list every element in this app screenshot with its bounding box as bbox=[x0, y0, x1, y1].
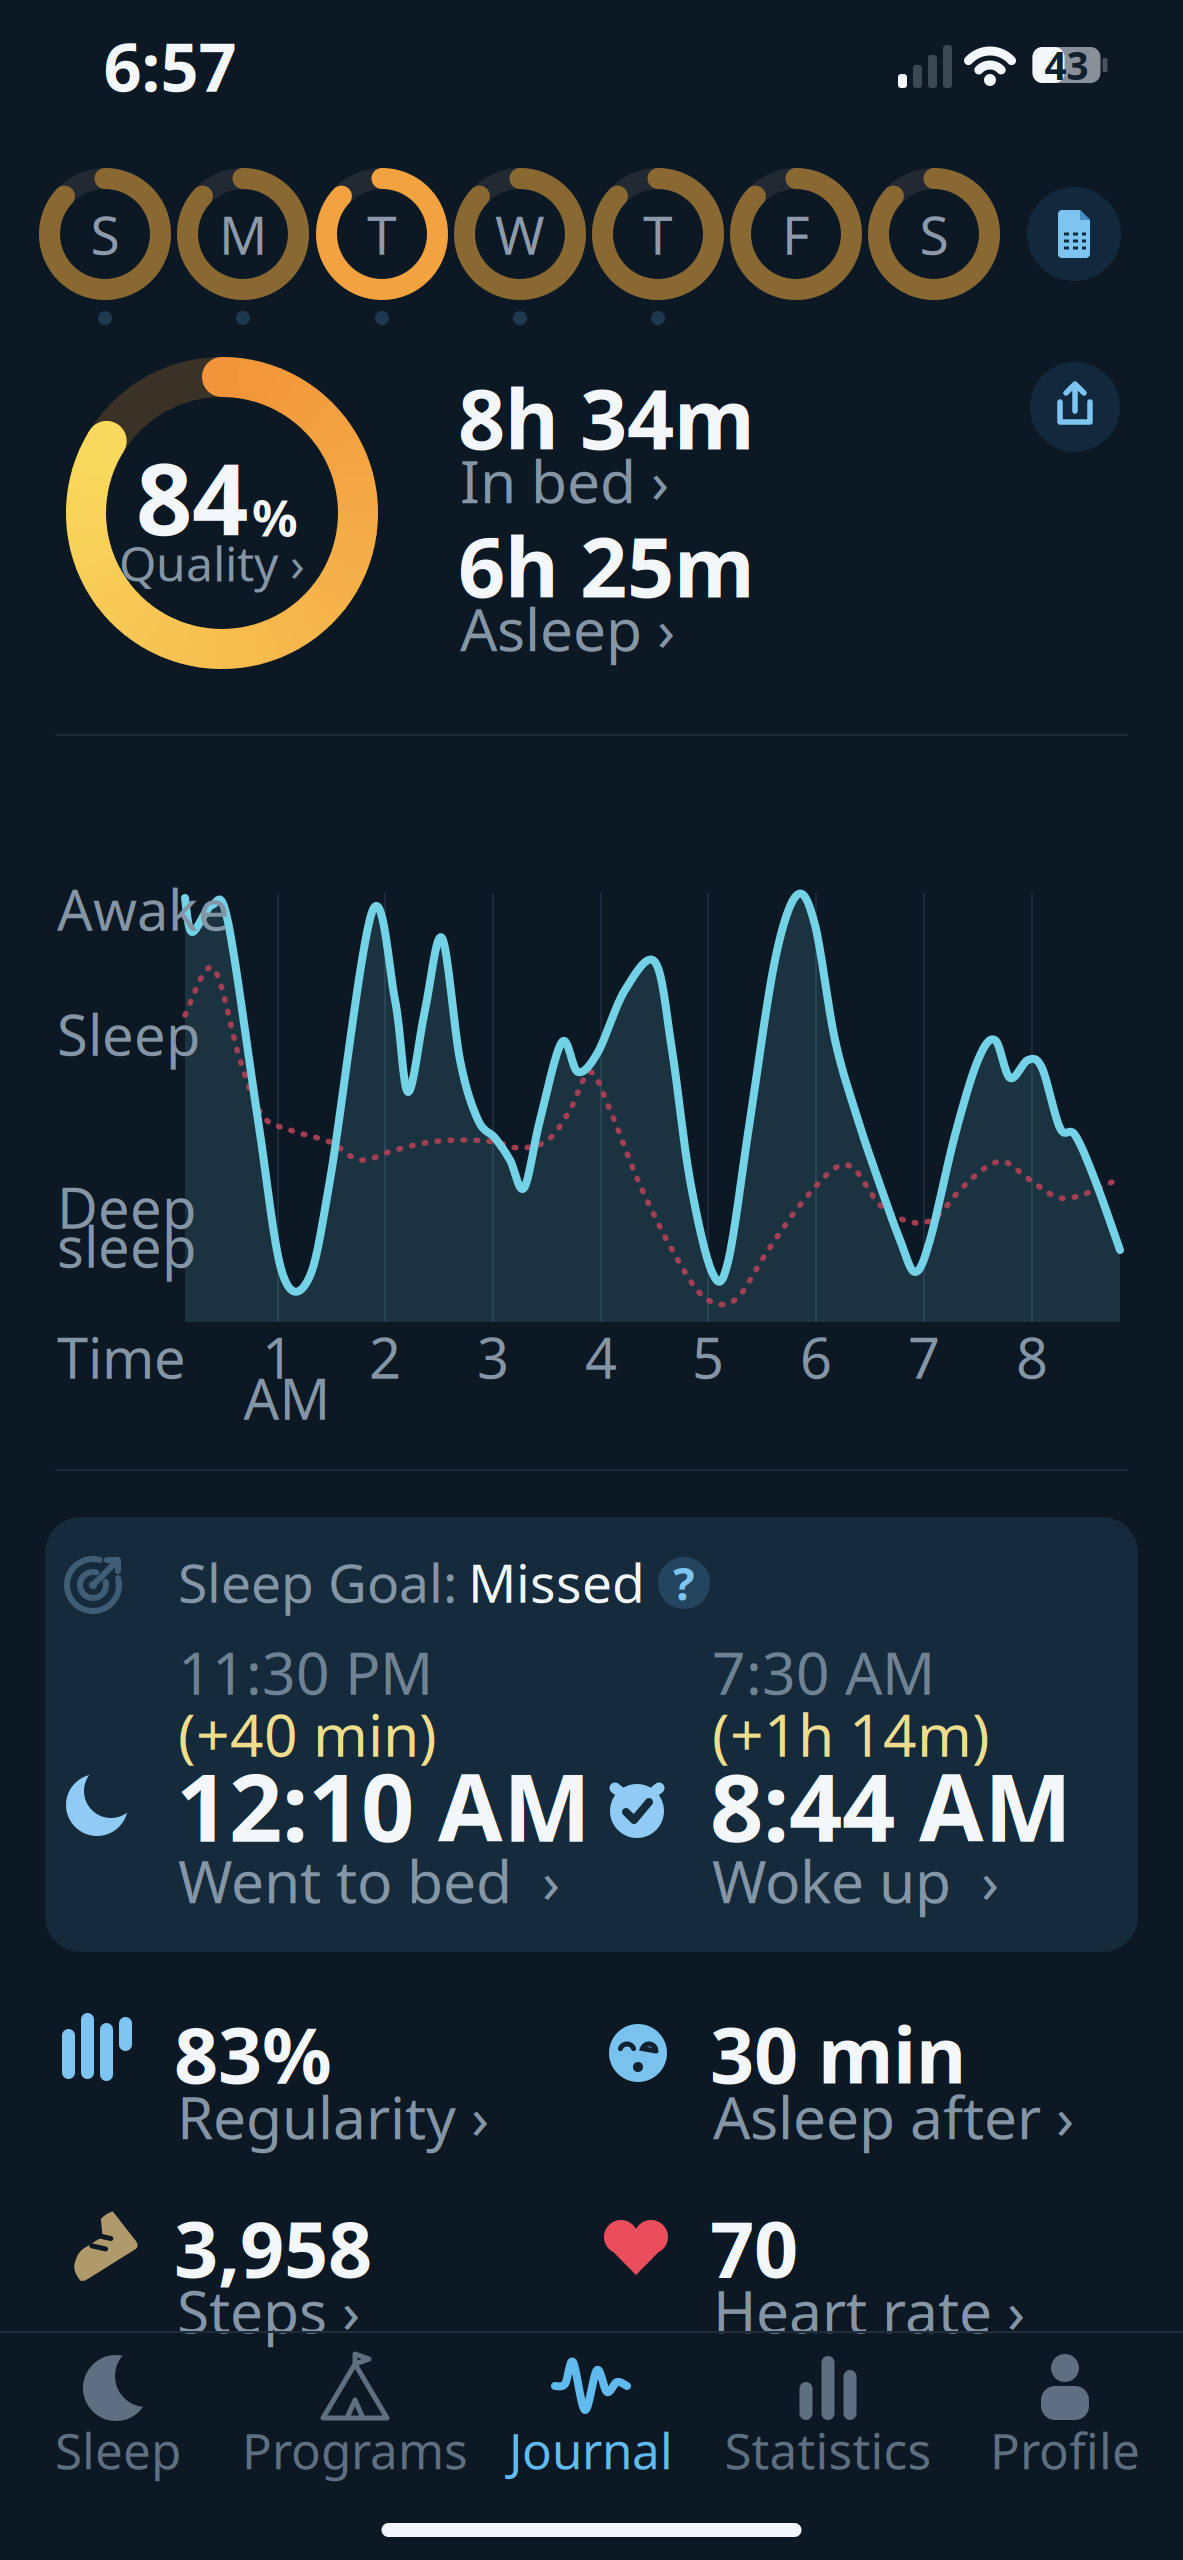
staticText: 83% bbox=[174, 2002, 332, 2105]
staticText: S bbox=[919, 199, 948, 269]
staticText: 5 bbox=[692, 1320, 724, 1394]
staticText: (+1h 14m) bbox=[712, 1695, 990, 1773]
staticText: (+40 min) bbox=[178, 1695, 437, 1773]
staticText: 4 bbox=[585, 1320, 617, 1394]
staticText: 84 bbox=[136, 431, 248, 562]
button[interactable]: 8:44 AM bbox=[704, 1761, 1134, 1916]
staticText: T bbox=[367, 199, 397, 269]
staticText: Deep bbox=[57, 1170, 196, 1244]
staticText: 8h 34m bbox=[458, 363, 755, 472]
button[interactable]: Profile bbox=[947, 2335, 1183, 2481]
staticText: 8:44 AM bbox=[710, 1743, 1072, 1867]
staticText: 3,958 bbox=[174, 2196, 372, 2299]
button[interactable]: S bbox=[39, 168, 171, 300]
staticText: 3 bbox=[477, 1320, 509, 1394]
button[interactable] bbox=[1026, 186, 1122, 282]
button[interactable]: Sleep bbox=[0, 2335, 236, 2481]
staticText: Asleep after › bbox=[713, 2077, 1074, 2155]
staticText: Journal bbox=[509, 2417, 673, 2483]
staticText: 6:57 bbox=[103, 22, 236, 110]
button[interactable] bbox=[1029, 361, 1121, 453]
staticText: Steps › bbox=[177, 2271, 360, 2349]
staticText: Programs bbox=[242, 2417, 468, 2483]
button[interactable]: 70 bbox=[704, 2209, 1136, 2344]
button[interactable]: Programs bbox=[237, 2335, 473, 2481]
staticText: Missed bbox=[468, 1547, 645, 1617]
button[interactable]: T bbox=[592, 168, 724, 300]
staticText: 7 bbox=[908, 1320, 940, 1394]
staticText: Heart rate › bbox=[713, 2271, 1025, 2349]
staticText: Regularity › bbox=[177, 2077, 489, 2155]
staticText: Quality › bbox=[119, 531, 305, 595]
staticText: W bbox=[495, 199, 545, 269]
staticText: AM bbox=[243, 1361, 330, 1435]
button[interactable]: 6h 25m bbox=[450, 520, 900, 665]
staticText: M bbox=[219, 199, 267, 269]
staticText: Sleep bbox=[57, 997, 200, 1071]
button[interactable]: T bbox=[316, 168, 448, 300]
staticText: ? bbox=[673, 1553, 695, 1613]
button[interactable]: M bbox=[177, 168, 309, 300]
button[interactable]: W bbox=[454, 168, 586, 300]
staticText: T bbox=[643, 199, 673, 269]
staticText: In bed › bbox=[460, 441, 669, 519]
staticText: 70 bbox=[710, 2196, 798, 2299]
staticText: 1 bbox=[262, 1320, 294, 1394]
staticText: Woke up › bbox=[712, 1841, 999, 1919]
button[interactable]: Statistics bbox=[710, 2335, 946, 2481]
button[interactable]: ? bbox=[658, 1557, 710, 1609]
staticText: sleep bbox=[57, 1209, 196, 1283]
staticText: Profile bbox=[990, 2417, 1140, 2483]
staticText: Time bbox=[57, 1320, 186, 1394]
staticText: 7:30 AM bbox=[712, 1633, 935, 1711]
staticText: % bbox=[252, 483, 298, 550]
staticText: 30 min bbox=[710, 2002, 966, 2105]
button[interactable]: 12:10 AM bbox=[170, 1761, 640, 1916]
button[interactable]: 84 bbox=[107, 447, 327, 607]
button[interactable]: F bbox=[730, 168, 862, 300]
button[interactable]: S bbox=[868, 168, 1000, 300]
button[interactable]: 30 min bbox=[704, 2015, 1136, 2150]
staticText: Went to bed › bbox=[178, 1841, 560, 1919]
staticText: 43 bbox=[1044, 39, 1088, 91]
staticText: 11:30 PM bbox=[178, 1633, 433, 1711]
staticText: Asleep › bbox=[460, 589, 675, 667]
button[interactable]: Journal bbox=[473, 2335, 709, 2481]
button[interactable]: 8h 34m bbox=[450, 370, 900, 515]
staticText: S bbox=[90, 199, 119, 269]
button[interactable]: 83% bbox=[168, 2015, 600, 2150]
staticText: Awake bbox=[57, 872, 230, 946]
staticText: Statistics bbox=[724, 2417, 931, 2483]
staticText: Sleep Goal: bbox=[178, 1547, 457, 1617]
staticText: 6 bbox=[800, 1320, 832, 1394]
staticText: 12:10 AM bbox=[176, 1743, 591, 1867]
staticText: 6h 25m bbox=[458, 511, 755, 620]
button[interactable]: 3,958 bbox=[168, 2209, 600, 2344]
staticText: 8 bbox=[1016, 1320, 1048, 1394]
staticText: 2 bbox=[369, 1320, 401, 1394]
staticText: F bbox=[782, 199, 810, 269]
staticText: Sleep bbox=[55, 2417, 181, 2483]
